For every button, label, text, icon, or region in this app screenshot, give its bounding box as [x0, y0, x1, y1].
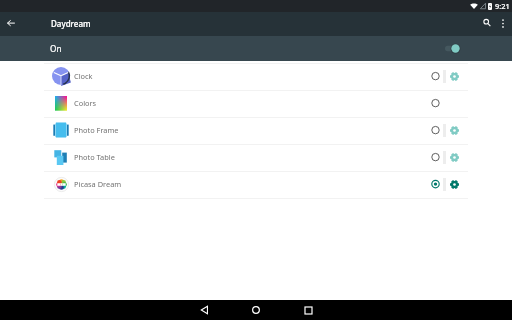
button[interactable]: Select Photo Frame: [427, 122, 443, 138]
button[interactable]: Recents: [298, 300, 318, 320]
button[interactable]: Photo Table: [0, 145, 512, 171]
staticText: Colors: [74, 98, 97, 108]
button[interactable]: Settings for Photo Frame: [446, 122, 462, 138]
staticText: On: [50, 43, 62, 54]
button[interactable]: Back: [3, 15, 19, 31]
staticText: Daydream: [51, 18, 91, 29]
button[interactable]: On: [0, 36, 512, 61]
button[interactable]: Search: [479, 15, 495, 31]
staticText: Picasa Dream: [74, 179, 122, 189]
button[interactable]: Select Photo Table: [427, 149, 443, 165]
staticText: Clock: [74, 71, 93, 81]
button[interactable]: Clock: [0, 64, 512, 90]
staticText: 9:21: [495, 1, 510, 11]
button[interactable]: Photo Frame: [0, 118, 512, 144]
staticText: Photo Frame: [74, 125, 119, 135]
button[interactable]: Colors: [0, 91, 512, 117]
button[interactable]: Select Clock: [427, 68, 443, 84]
button[interactable]: Settings for Picasa Dream: [446, 176, 462, 192]
button[interactable]: Settings for Photo Table: [446, 149, 462, 165]
button[interactable]: Home: [246, 300, 266, 320]
button[interactable]: Settings for Clock: [446, 68, 462, 84]
button[interactable]: Back: [194, 300, 214, 320]
button[interactable]: Select Picasa Dream: [427, 176, 443, 192]
staticText: Photo Table: [74, 152, 115, 162]
button[interactable]: Select Colors: [427, 95, 443, 111]
button[interactable]: Picasa Dream: [0, 172, 512, 198]
button[interactable]: More options: [495, 15, 511, 31]
